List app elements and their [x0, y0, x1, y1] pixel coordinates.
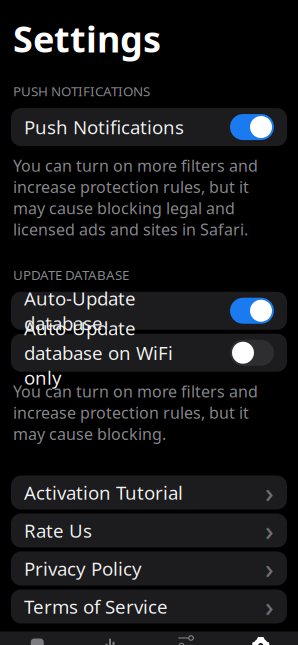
- button[interactable]: Settings: [223, 631, 298, 645]
- staticText: Terms of Service: [24, 594, 168, 619]
- staticText: Auto-Update database on WiFi only: [24, 315, 173, 390]
- staticText: Settings: [13, 14, 161, 62]
- button[interactable]: Terms of Service: [11, 589, 287, 623]
- button[interactable]: Statistics: [74, 631, 149, 645]
- staticText: Privacy Policy: [24, 556, 142, 581]
- staticText: Activation Tutorial: [24, 480, 183, 505]
- staticText: UPDATE DATABASE: [13, 266, 129, 284]
- button[interactable]: Main: [0, 631, 74, 645]
- button[interactable]: Rules: [149, 631, 223, 645]
- staticText: You can turn on more filters and increas…: [13, 381, 258, 444]
- staticText: Push Notifications: [24, 115, 184, 139]
- staticText: You can turn on more filters and increas…: [13, 155, 258, 240]
- staticText: Rate Us: [24, 518, 92, 543]
- button[interactable]: Push Notifications: [11, 108, 287, 146]
- staticText: ›: [265, 475, 274, 510]
- button[interactable]: Auto-Update database: [11, 292, 287, 330]
- staticText: ›: [265, 513, 274, 548]
- button[interactable]: Activation Tutorial: [11, 475, 287, 509]
- staticText: ›: [265, 551, 274, 586]
- staticText: Auto-Update database: [24, 286, 136, 335]
- button[interactable]: Rate Us: [11, 513, 287, 547]
- button[interactable]: Privacy Policy: [11, 551, 287, 585]
- staticText: ›: [265, 589, 274, 624]
- staticText: PUSH NOTIFICATIONS: [13, 82, 150, 100]
- button[interactable]: Auto-Update database on WiFi only: [11, 334, 287, 372]
